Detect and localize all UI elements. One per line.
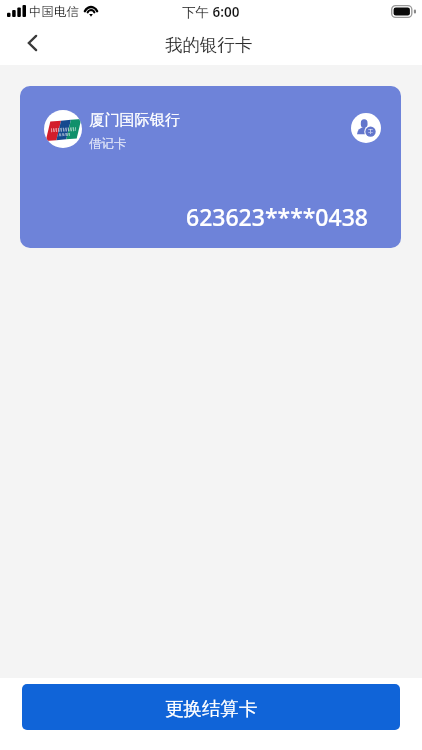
staticText: 我的银行卡 bbox=[165, 34, 253, 56]
staticText: 更换结算卡 bbox=[165, 697, 258, 720]
staticText: 中国电信 bbox=[29, 4, 79, 20]
button[interactable]: Back bbox=[0, 26, 56, 65]
button[interactable]: Card holder bbox=[351, 113, 381, 143]
staticText: 623623****0438 bbox=[186, 201, 368, 232]
staticText: 下午 6:00 bbox=[182, 3, 240, 21]
button[interactable]: 更换结算卡 bbox=[22, 684, 400, 730]
button[interactable]: 厦门国际银行 bbox=[20, 86, 401, 248]
staticText: 借记卡 bbox=[89, 136, 127, 152]
staticText: 厦门国际银行 bbox=[89, 110, 181, 129]
